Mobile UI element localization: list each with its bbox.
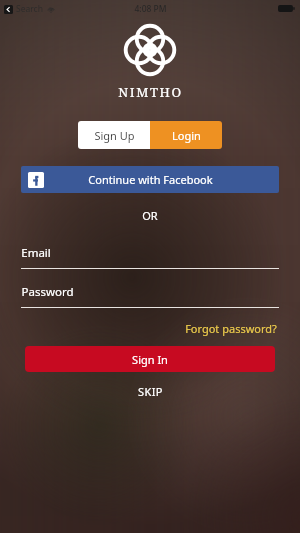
staticText: Sign Up (94, 128, 135, 143)
staticText: Login (172, 128, 201, 143)
staticText: Sign In (132, 352, 168, 367)
button[interactable]: Continue with Facebook (21, 166, 279, 193)
button[interactable]: Sign Up (78, 121, 150, 149)
button[interactable]: Forgot password? (183, 319, 279, 338)
staticText: Email (21, 245, 51, 261)
staticText: OR (142, 208, 158, 223)
other: Nimtho logo (123, 23, 177, 77)
staticText: 4:08 PM (134, 3, 167, 15)
button[interactable]: Sign In (25, 346, 275, 372)
button[interactable]: Password (21, 284, 279, 308)
staticText: SKIP (138, 384, 163, 399)
button[interactable]: Login (150, 121, 222, 149)
button[interactable]: Email (21, 245, 279, 269)
staticText: NIMTHO (118, 83, 183, 101)
other: Continue with Facebook (28, 172, 44, 188)
staticText: Forgot password? (185, 321, 277, 336)
staticText: Search (16, 3, 43, 15)
button[interactable]: SKIP (124, 382, 177, 401)
staticText: Continue with Facebook (88, 172, 213, 187)
staticText: Password (21, 284, 74, 300)
